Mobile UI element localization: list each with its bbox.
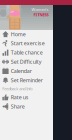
- staticText: Set Reminder: [11, 77, 43, 84]
- button[interactable]: Rate us: [0, 93, 53, 102]
- staticText: Women's: [31, 7, 48, 12]
- button[interactable]: Start exercise: [0, 39, 53, 48]
- staticText: FITNESS: [33, 12, 48, 17]
- button[interactable]: Set Difficulty: [0, 57, 53, 66]
- staticText: Share: [11, 103, 25, 110]
- button[interactable]: Set Reminder: [0, 75, 53, 85]
- staticText: Set Difficulty: [11, 58, 42, 65]
- button[interactable]: Calendar: [0, 66, 53, 75]
- button[interactable]: Share: [0, 102, 53, 111]
- button[interactable]: Table chance: [0, 48, 53, 57]
- staticText: Table chance: [11, 49, 43, 56]
- staticText: Start exercise: [11, 40, 45, 47]
- staticText: Calendar: [11, 67, 32, 74]
- staticText: Rate us: [11, 94, 29, 101]
- staticText: Feedback and Info: [2, 86, 32, 91]
- button[interactable]: Home: [0, 29, 53, 39]
- staticText: Home: [11, 31, 26, 38]
